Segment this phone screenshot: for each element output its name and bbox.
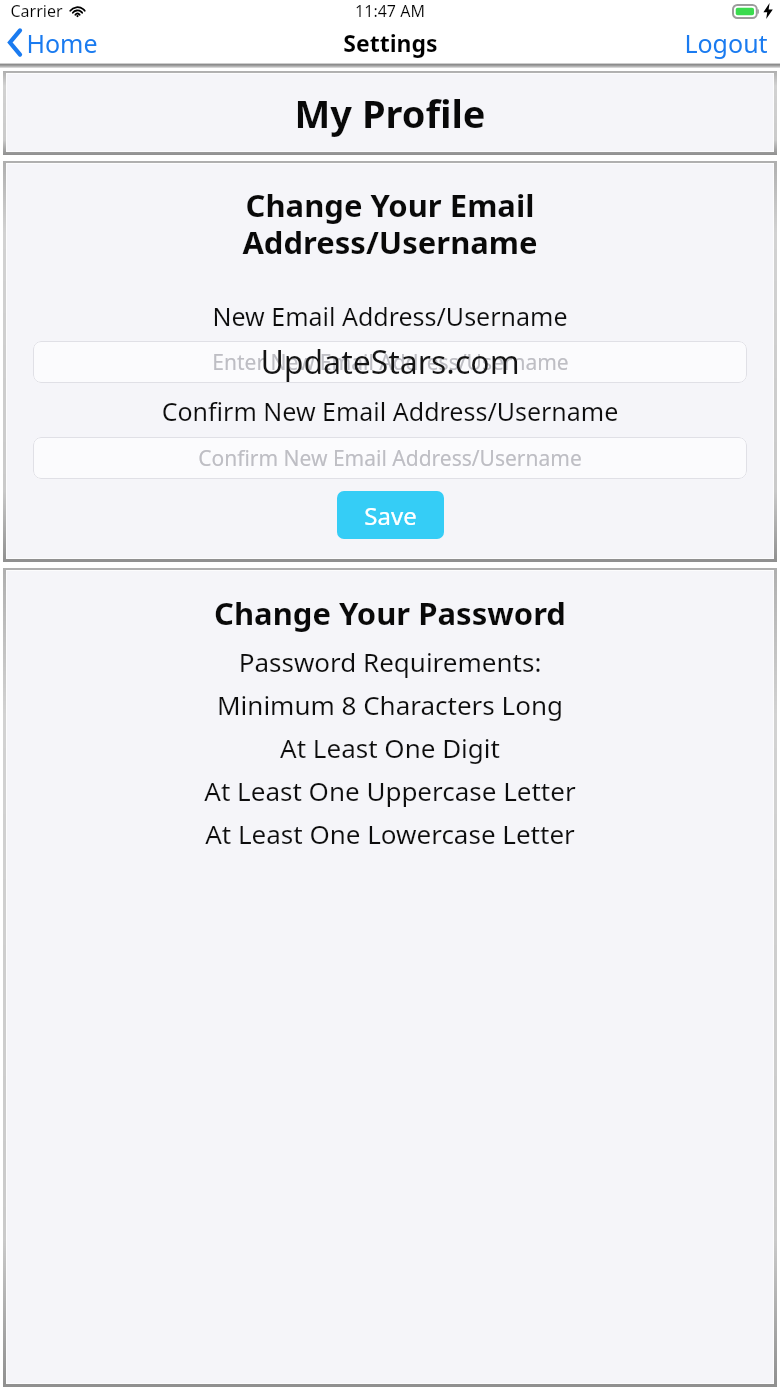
staticText: Password Requirements: [7,644,773,679]
staticText: Change Your Password [7,592,773,634]
staticText: Minimum 8 Characters Long [7,687,773,722]
staticText: Save [364,499,417,532]
staticText: New Email Address/Username [33,299,747,333]
button[interactable]: Home [0,22,110,63]
staticText: 11:47 AM [355,0,425,22]
staticText: Home [26,26,98,60]
staticText: Settings [343,27,438,58]
button[interactable]: Confirm New Email Address/Username [33,437,747,479]
button[interactable]: My Profile [3,71,777,155]
staticText: Carrier [10,0,63,22]
button[interactable]: Enter New Email Address/Username [33,341,747,383]
staticText: My Profile [294,87,486,139]
staticText: Confirm New Email Address/Username [198,444,582,473]
staticText: Change Your Email Address/Username [23,184,757,263]
staticText: At Least One Uppercase Letter [7,773,773,808]
staticText: UpdateStars.com [7,340,773,384]
staticText: Enter New Email Address/Username [212,348,569,377]
staticText: Confirm New Email Address/Username [33,394,747,428]
button[interactable]: Save [337,491,444,539]
button[interactable]: Logout [672,22,780,63]
staticText: At Least One Lowercase Letter [7,816,773,851]
staticText: Logout [684,26,768,60]
staticText: At Least One Digit [7,730,773,765]
